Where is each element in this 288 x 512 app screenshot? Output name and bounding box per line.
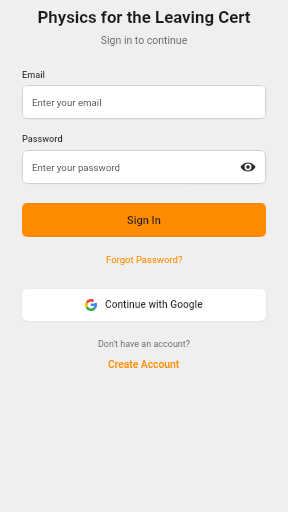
- staticText: Physics for the Leaving Cert: [0, 7, 288, 27]
- button[interactable]: Forgot Password?: [96, 250, 193, 269]
- staticText: Enter your password: [32, 162, 121, 173]
- button[interactable]: Enter your password: [22, 150, 266, 184]
- button[interactable]: Sign In: [22, 203, 266, 237]
- staticText: Don't have an account?: [0, 339, 288, 350]
- staticText: Create Account: [108, 358, 180, 370]
- button[interactable]: Continue with Google: [22, 289, 266, 321]
- staticText: Enter your email: [32, 97, 102, 108]
- staticText: Password: [22, 133, 63, 144]
- staticText: Continue with Google: [105, 299, 203, 311]
- staticText: Email: [22, 69, 45, 80]
- button[interactable]: Enter your email: [22, 85, 266, 119]
- button[interactable]: Show password: [238, 157, 258, 177]
- staticText: Sign In: [127, 214, 161, 227]
- staticText: Sign in to continue: [0, 34, 288, 46]
- button[interactable]: Create Account: [98, 354, 190, 374]
- staticText: Forgot Password?: [106, 254, 183, 265]
